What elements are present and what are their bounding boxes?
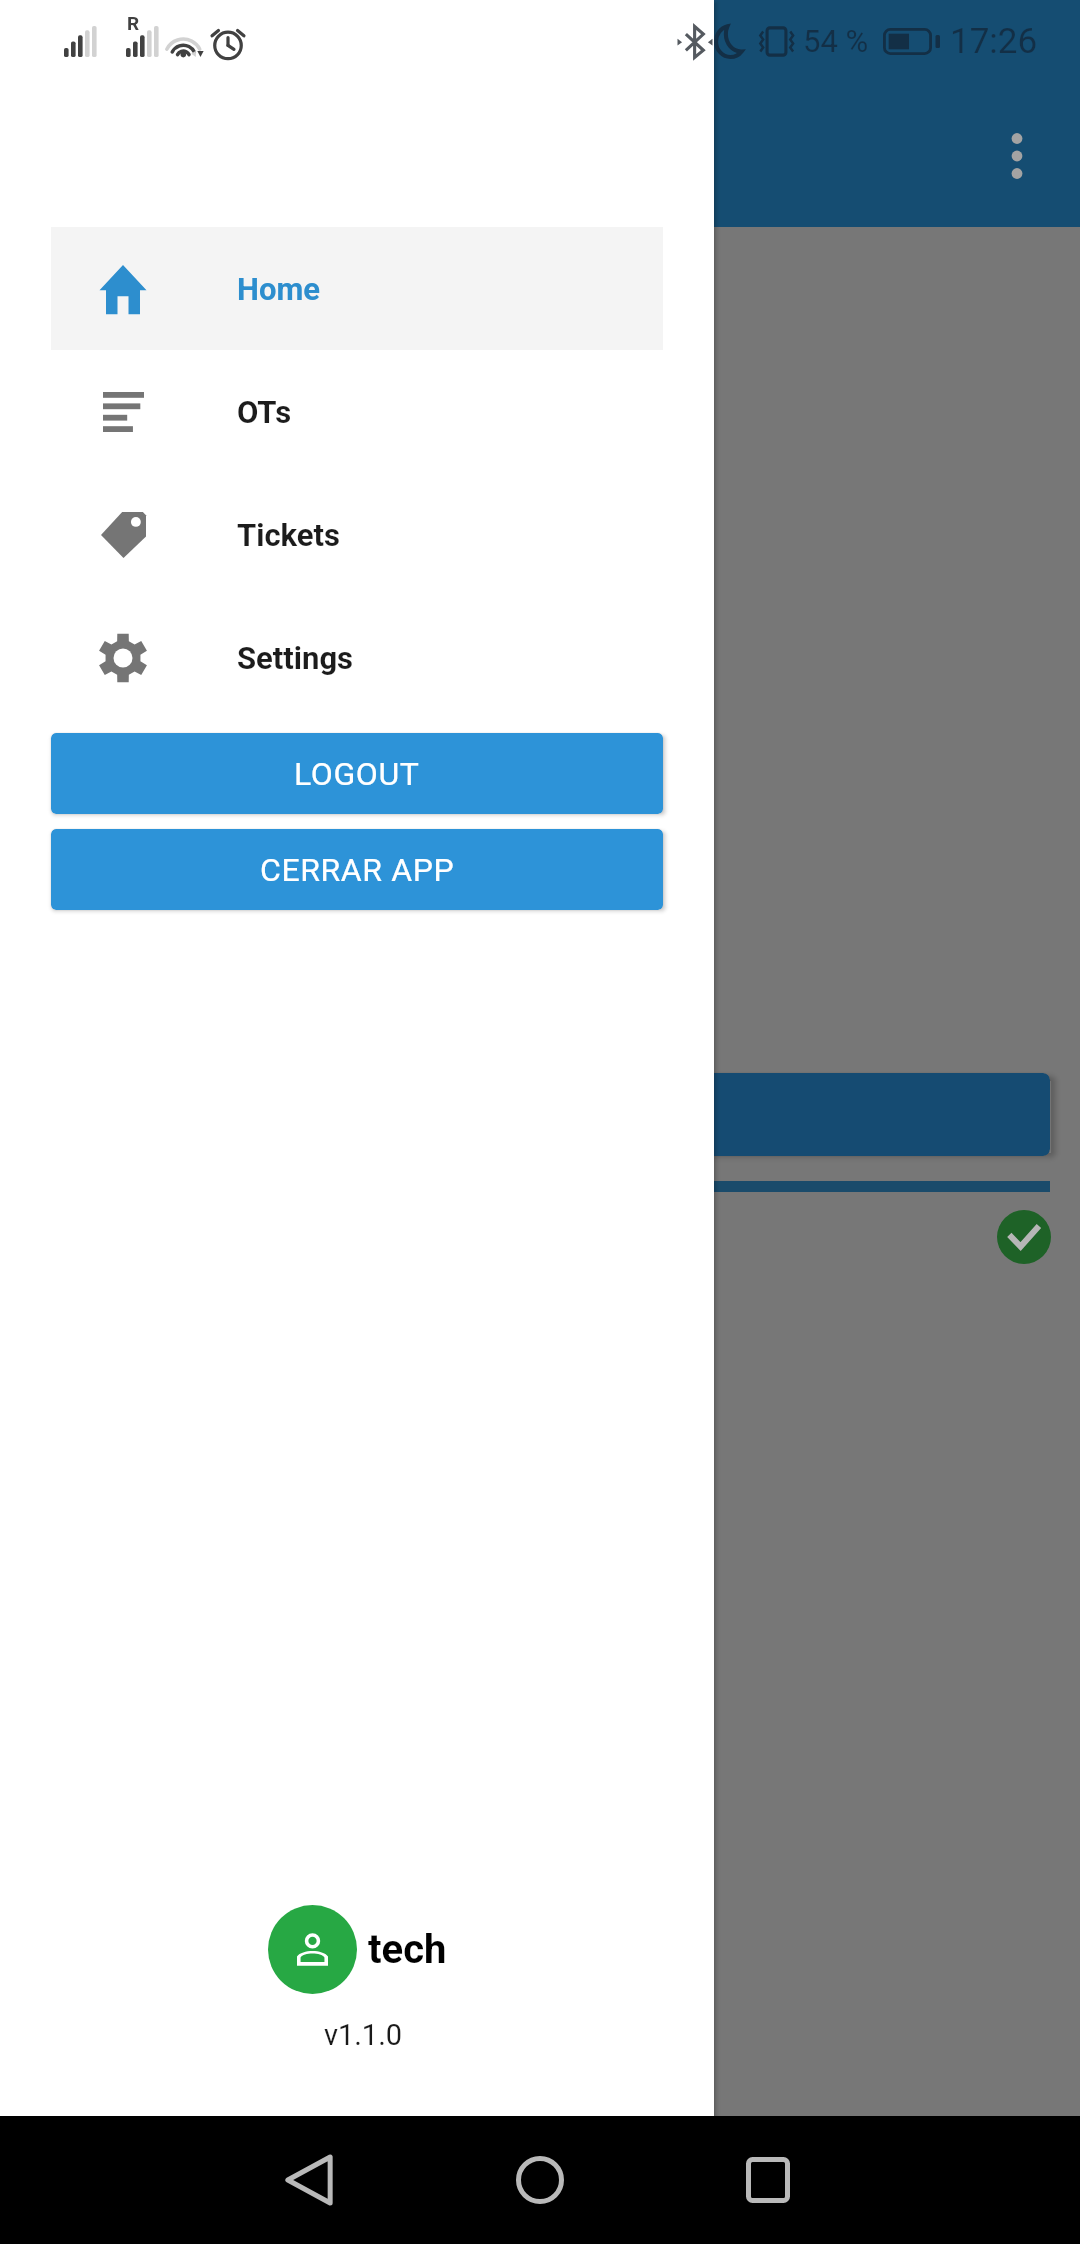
staticText: 17:26 xyxy=(950,21,1038,62)
staticText: LOGOUT xyxy=(294,755,420,793)
button[interactable]: Back xyxy=(245,2116,373,2244)
button[interactable]: Work order card xyxy=(30,1073,1050,1156)
button[interactable]: Confirm xyxy=(997,1210,1051,1264)
button[interactable]: Home xyxy=(476,2116,604,2244)
staticText: Home xyxy=(237,271,320,307)
staticText: R xyxy=(127,12,140,34)
button[interactable]: Home xyxy=(51,227,663,350)
button[interactable]: CERRAR APP xyxy=(51,829,663,910)
staticText: CERRAR APP xyxy=(260,851,455,889)
staticText: v1.1.0 xyxy=(6,2018,714,2052)
staticText: Tickets xyxy=(237,517,340,553)
staticText: OTs xyxy=(237,394,292,430)
button[interactable]: Tickets xyxy=(51,473,663,596)
button[interactable]: LOGOUT xyxy=(51,733,663,814)
staticText: tech xyxy=(368,1926,447,1973)
staticText: Settings xyxy=(237,640,354,676)
button[interactable]: More options xyxy=(988,127,1046,185)
staticText: 54 % xyxy=(803,23,869,59)
button[interactable]: Recents xyxy=(704,2116,832,2244)
button[interactable]: Settings xyxy=(51,596,663,719)
button[interactable]: User profile xyxy=(268,1905,357,1994)
button[interactable]: OTs xyxy=(51,350,663,473)
